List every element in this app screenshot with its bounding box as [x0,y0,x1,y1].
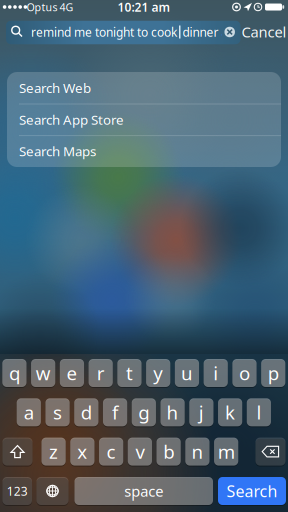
staticText: d [81,400,92,425]
button[interactable]: z [41,438,66,466]
button[interactable]: Search Maps [7,135,281,167]
button[interactable]: Search App Store [7,104,281,135]
button[interactable]: a [17,398,41,426]
staticText: g [138,400,149,425]
staticText: Search Web [19,79,91,97]
staticText: u [181,361,193,385]
button[interactable]: k [218,398,242,426]
button[interactable]: q [2,359,26,387]
staticText: 123 [7,483,28,499]
button[interactable]: f [103,398,127,426]
button[interactable]: x [70,438,94,466]
staticText: z [49,439,58,464]
staticText: o [239,361,250,385]
button[interactable]: Delete [255,438,285,466]
button[interactable]: v [128,438,152,466]
staticText: i [213,361,218,385]
staticText: k [225,400,235,425]
staticText: dinner at 7 [182,24,242,40]
staticText: Search Maps [19,142,96,160]
button[interactable]: Cancel [241,22,286,41]
staticText: h [167,400,179,425]
staticText: x [77,439,87,464]
staticText: b [163,439,174,464]
button[interactable]: j [189,398,213,426]
staticText: Cancel [241,22,286,41]
button[interactable]: g [132,398,156,426]
button[interactable]: d [74,398,98,426]
staticText: Search App Store [19,111,124,128]
staticText: c [107,439,116,464]
staticText: 4G [59,0,73,14]
button[interactable]: t [117,359,141,387]
staticText: w [36,361,51,385]
staticText: t [126,361,133,385]
button[interactable]: y [146,359,170,387]
button[interactable]: w [31,359,55,387]
button[interactable]: i [204,359,228,387]
staticText: f [112,400,118,425]
staticText: Search [226,480,277,502]
button[interactable]: e [60,359,84,387]
staticText: Optus [26,0,57,14]
button[interactable]: Search Web [7,72,281,104]
staticText: space [124,481,163,501]
staticText: n [191,439,203,464]
button[interactable]: r [89,359,113,387]
staticText: a [24,400,34,425]
staticText: m [218,439,235,464]
button[interactable]: 123 [2,477,32,505]
button[interactable]: Search [218,477,286,505]
button[interactable]: n [185,438,209,466]
button[interactable]: b [156,438,181,466]
staticText: v [135,439,144,464]
button[interactable]: h [160,398,185,426]
button[interactable]: p [261,359,285,387]
staticText: e [66,361,77,385]
button[interactable]: l [247,398,271,426]
button[interactable]: u [175,359,199,387]
staticText: q [9,361,20,385]
staticText: y [153,361,163,385]
staticText: 10:21 am [117,0,170,15]
button[interactable]: space [74,477,213,505]
staticText: l [256,400,261,425]
button[interactable]: Shift [2,438,32,466]
button[interactable]: o [232,359,257,387]
staticText: s [53,400,62,425]
button[interactable]: Next keyboard [36,477,68,505]
staticText: remind me tonight to cook [31,24,177,40]
button[interactable]: m [214,438,238,466]
button[interactable]: s [45,398,70,426]
button[interactable]: c [99,438,123,466]
button[interactable]: Search field [6,21,240,44]
staticText: j [199,400,204,425]
button[interactable]: Clear text [224,27,235,37]
staticText: r [97,361,105,385]
staticText: p [268,361,279,385]
